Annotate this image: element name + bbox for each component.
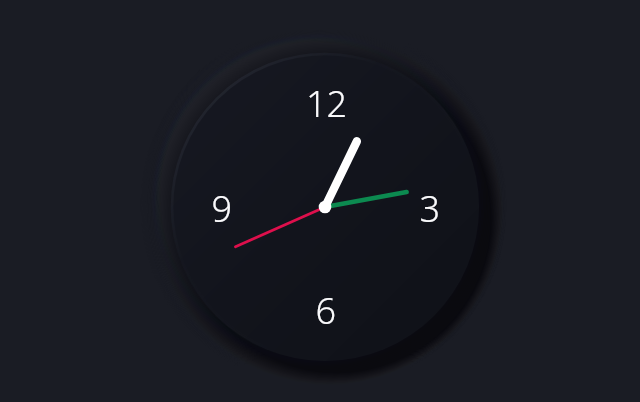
button[interactable]: Analog clock watch face (0, 0, 640, 402)
